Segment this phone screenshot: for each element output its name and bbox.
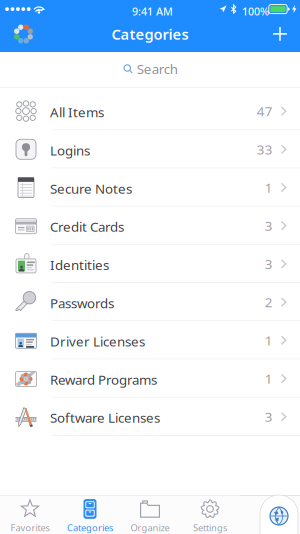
button[interactable]: Vaults [3, 18, 43, 50]
button[interactable]: Passwords [0, 283, 300, 321]
button[interactable]: Driver Licenses [0, 321, 300, 359]
staticText: 47 [257, 102, 273, 120]
staticText: Categories [67, 521, 113, 534]
staticText: Categories [111, 24, 188, 44]
staticText: Settings [193, 521, 227, 534]
staticText: 33 [257, 140, 273, 158]
button[interactable]: Organize [120, 496, 180, 534]
staticText: Software Licenses [50, 409, 160, 426]
button[interactable]: Identities [0, 245, 300, 283]
staticText: Reward Programs [50, 371, 157, 388]
staticText: Passwords [50, 294, 114, 312]
staticText: 3 [265, 408, 273, 425]
staticText: 1 [265, 370, 273, 387]
staticText: 100% [242, 4, 269, 19]
staticText: 2 [265, 293, 273, 311]
staticText: 1 [265, 331, 273, 349]
staticText: All Items [50, 103, 104, 121]
staticText: Credit Cards [50, 218, 124, 235]
staticText: 9:41 AM [132, 4, 173, 19]
staticText: Favorites [10, 521, 49, 534]
staticText: Driver Licenses [50, 332, 145, 350]
button[interactable]: Add item [261, 18, 299, 50]
staticText: 3 [265, 217, 273, 234]
button[interactable]: Software Licenses [0, 398, 300, 436]
button[interactable]: Settings [180, 496, 240, 534]
button[interactable]: Secure Notes [0, 168, 300, 207]
staticText: 3 [265, 255, 273, 273]
button[interactable]: Logins [0, 130, 300, 168]
button[interactable]: All Items [0, 92, 300, 130]
button[interactable]: Browser [260, 495, 298, 534]
staticText: Secure Notes [50, 180, 132, 197]
button[interactable]: Favorites [0, 496, 60, 534]
button[interactable]: Reward Programs [0, 359, 300, 398]
staticText: Logins [50, 141, 90, 159]
staticText: Search [137, 60, 178, 78]
staticText: 1 [265, 179, 273, 196]
staticText: Organize [130, 521, 169, 534]
button[interactable]: Search [0, 52, 300, 87]
staticText: Identities [50, 256, 109, 274]
button[interactable]: Categories [60, 496, 120, 534]
button[interactable]: Credit Cards [0, 207, 300, 245]
